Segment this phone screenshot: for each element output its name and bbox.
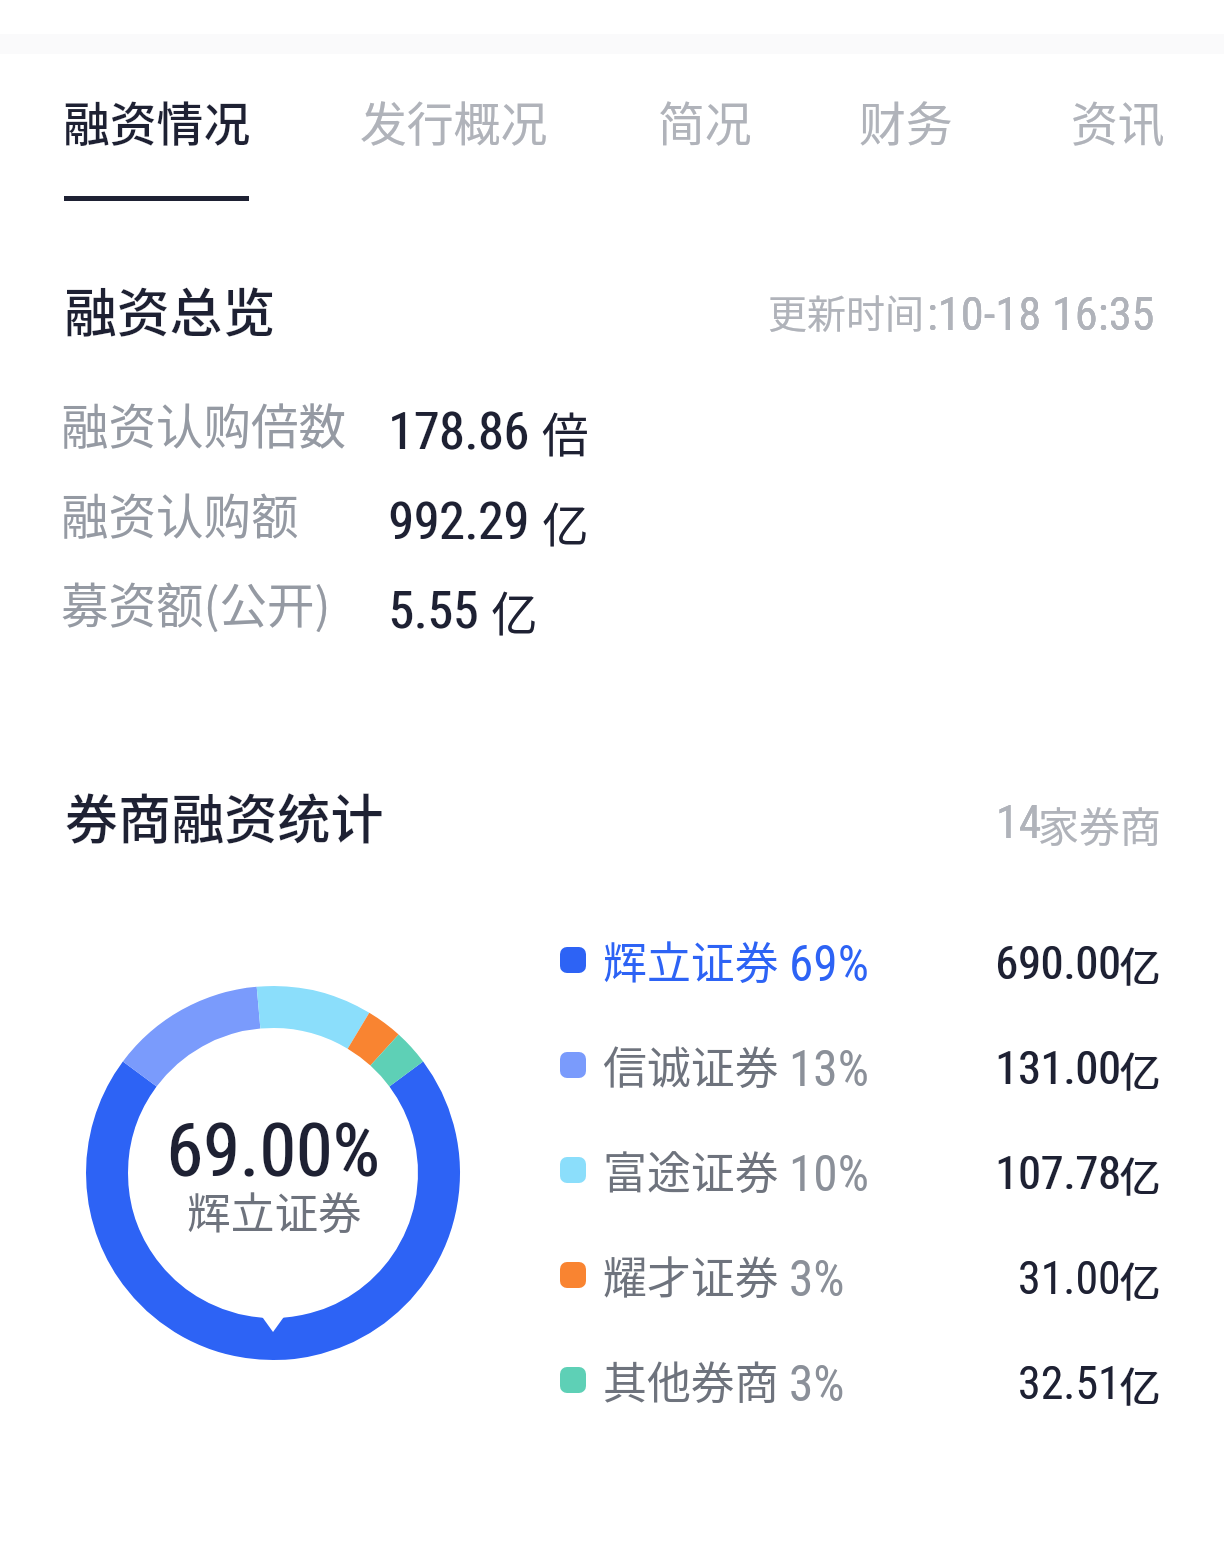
button[interactable]: 资讯	[1052, 69, 1184, 173]
button[interactable]: 信诚证券	[556, 1013, 1162, 1117]
staticText: 融资总览	[64, 271, 276, 347]
staticText: 耀才证券	[603, 1243, 779, 1307]
staticText: 资讯	[1071, 87, 1165, 155]
staticText: 131.00	[996, 1041, 1122, 1095]
staticText: 亿	[1119, 934, 1160, 993]
staticText: 69%	[789, 935, 869, 993]
staticText: 倍	[542, 398, 589, 465]
button[interactable]: 财务	[838, 69, 974, 173]
staticText: 富途证券	[603, 1138, 779, 1202]
staticText: 发行概况	[360, 87, 548, 155]
staticText: 其他券商	[603, 1348, 779, 1412]
staticText: :10-18 16:35	[927, 287, 1155, 341]
staticText: 更新时间	[768, 283, 925, 339]
button[interactable]: 简况	[638, 69, 772, 173]
staticText: 32.51	[1018, 1356, 1121, 1410]
staticText: 14	[996, 795, 1042, 849]
staticText: 融资情况	[63, 87, 251, 155]
staticText: 3%	[789, 1355, 845, 1413]
staticText: 31.00	[1018, 1251, 1121, 1305]
staticText: 10%	[789, 1145, 869, 1203]
staticText: 107.78	[996, 1146, 1122, 1200]
staticText: 178.86	[389, 401, 530, 461]
staticText: 倍	[542, 398, 589, 465]
staticText: 亿	[542, 488, 589, 555]
staticText: 69.00%	[166, 1107, 380, 1194]
button[interactable]: 富途证券	[556, 1118, 1162, 1222]
staticText: 31.00	[1018, 1251, 1121, 1305]
button[interactable]: 发行概况	[338, 69, 570, 173]
staticText: 家券商	[1038, 794, 1161, 853]
staticText: 辉立证券	[187, 1178, 362, 1241]
staticText: 亿	[491, 577, 538, 644]
button[interactable]: 辉立证券	[556, 908, 1162, 1012]
button[interactable]: 其他券商	[556, 1328, 1162, 1432]
button[interactable]: 融资情况	[42, 69, 271, 173]
staticText: 融资认购倍数	[61, 389, 346, 458]
staticText: 亿	[491, 577, 538, 644]
staticText: 亿	[1120, 1039, 1161, 1098]
staticText: 募资额(公开)	[61, 568, 331, 637]
staticText: 亿	[1120, 1354, 1161, 1413]
staticText: :10-18 16:35	[927, 287, 1155, 341]
staticText: 信诚证券	[603, 1033, 779, 1097]
staticText: 亿	[1120, 1144, 1161, 1203]
staticText: 财务	[859, 87, 953, 155]
staticText: 3%	[789, 1250, 845, 1308]
staticText: 32.51	[1018, 1356, 1121, 1410]
staticText: 亿	[1119, 1039, 1160, 1098]
staticText: 13%	[789, 1040, 869, 1098]
staticText: 辉立证券	[603, 928, 779, 992]
staticText: 亿	[1119, 1354, 1160, 1413]
button[interactable]: 耀才证券	[556, 1223, 1162, 1327]
staticText: 券商融资统计	[65, 777, 384, 854]
staticText: 131.00	[995, 1041, 1121, 1095]
staticText: 14	[996, 795, 1042, 849]
staticText: 69.00%	[167, 1107, 381, 1194]
staticText: 107.78	[995, 1146, 1121, 1200]
staticText: 亿	[1120, 1249, 1161, 1308]
staticText: 亿	[542, 488, 589, 555]
staticText: 178.86	[388, 401, 529, 461]
staticText: 690.00	[996, 936, 1122, 990]
staticText: 亿	[1120, 934, 1161, 993]
staticText: 5.55	[389, 580, 479, 640]
staticText: 亿	[1119, 1144, 1160, 1203]
staticText: 融资认购额	[61, 479, 299, 548]
staticText: 亿	[1119, 1249, 1160, 1308]
staticText: 简况	[658, 87, 752, 155]
staticText: 5.55	[388, 580, 478, 640]
staticText: 992.29	[389, 491, 530, 551]
staticText: 690.00	[995, 936, 1121, 990]
staticText: 992.29	[388, 491, 529, 551]
